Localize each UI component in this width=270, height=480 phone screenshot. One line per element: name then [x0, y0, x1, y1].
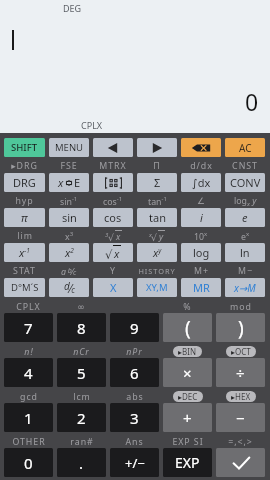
button[interactable]: x-1: [4, 243, 45, 262]
staticText: cos-1: [103, 195, 123, 207]
button[interactable]: cos: [93, 208, 133, 227]
staticText: Π: [153, 160, 161, 172]
staticText: ▸DRG: [11, 160, 38, 172]
button[interactable]: Left: [93, 138, 133, 157]
button[interactable]: x→M: [225, 278, 265, 297]
button[interactable]: 0: [4, 448, 53, 477]
button[interactable]: tan: [137, 208, 177, 227]
button[interactable]: [93, 173, 133, 192]
staticText: 8: [77, 318, 86, 338]
staticText: 3: [130, 408, 139, 428]
staticText: sin: [62, 210, 77, 225]
staticText: −: [236, 408, 245, 428]
button[interactable]: sin: [49, 208, 89, 227]
button[interactable]: Right: [137, 138, 177, 157]
button[interactable]: 2: [57, 403, 106, 432]
button[interactable]: .: [57, 448, 106, 477]
button[interactable]: xy: [137, 243, 177, 262]
staticText: ran#: [70, 436, 94, 448]
staticText: %: [183, 301, 192, 313]
staticText: X: [110, 280, 117, 295]
button[interactable]: −: [216, 403, 265, 432]
button[interactable]: 1: [4, 403, 53, 432]
staticText: i: [200, 210, 203, 225]
button[interactable]: 4: [4, 358, 53, 387]
staticText: CPLX: [81, 119, 103, 131]
staticText: ▸OCT: [231, 346, 251, 357]
staticText: CNST: [232, 160, 258, 172]
button[interactable]: x2: [49, 243, 89, 262]
button[interactable]: ln: [225, 243, 265, 262]
staticText: 3: [105, 231, 109, 239]
button[interactable]: XY,M: [137, 278, 177, 297]
staticText: nPr: [126, 346, 143, 358]
button[interactable]: AC: [225, 138, 265, 157]
button[interactable]: x: [49, 173, 89, 192]
button[interactable]: [216, 448, 265, 477]
staticText: d⁄c: [64, 279, 75, 296]
staticText: +: [183, 408, 192, 428]
button[interactable]: (: [163, 313, 212, 342]
button[interactable]: i: [181, 208, 221, 227]
staticText: E: [74, 175, 81, 190]
staticText: lim: [17, 230, 33, 242]
staticText: y: [159, 231, 164, 243]
staticText: π: [21, 210, 28, 225]
staticText: log: [193, 245, 210, 260]
button[interactable]: 8: [57, 313, 106, 342]
button[interactable]: Σ: [137, 173, 177, 192]
button[interactable]: √: [93, 243, 133, 262]
button[interactable]: MR: [181, 278, 221, 297]
staticText: a b⁄c: [61, 265, 77, 278]
button[interactable]: ∫dx: [181, 173, 221, 192]
button[interactable]: +/−: [110, 448, 159, 477]
button[interactable]: EXP: [163, 448, 212, 477]
button[interactable]: 3: [110, 403, 159, 432]
button[interactable]: DRG: [4, 173, 45, 192]
button[interactable]: e: [225, 208, 265, 227]
staticText: AC: [239, 141, 252, 155]
staticText: ▸BIN: [178, 346, 197, 357]
button[interactable]: ): [216, 313, 265, 342]
staticText: ×: [183, 363, 192, 383]
staticText: tan-1: [148, 195, 167, 207]
staticText: DEG: [63, 2, 82, 14]
staticText: 6: [130, 363, 139, 383]
button[interactable]: +: [163, 403, 212, 432]
staticText: 4: [24, 363, 33, 383]
staticText: x: [58, 175, 64, 190]
staticText: M+: [194, 265, 209, 277]
button[interactable]: π: [4, 208, 45, 227]
button[interactable]: SHIFT: [4, 138, 45, 157]
staticText: logx y: [234, 195, 257, 208]
button[interactable]: D°M´S: [4, 278, 45, 297]
staticText: D°M´S: [11, 281, 39, 294]
staticText: M−: [238, 265, 253, 277]
staticText: .: [79, 453, 84, 473]
button[interactable]: 9: [110, 313, 159, 342]
button[interactable]: ×: [163, 358, 212, 387]
button[interactable]: MENU: [49, 138, 89, 157]
button[interactable]: 5: [57, 358, 106, 387]
staticText: =,<,>: [228, 436, 253, 448]
button[interactable]: X: [93, 278, 133, 297]
staticText: SHIFT: [11, 141, 38, 154]
staticText: CPLX: [16, 301, 41, 313]
staticText: abs: [126, 391, 144, 403]
button[interactable]: ÷: [216, 358, 265, 387]
staticText: MTRX: [99, 160, 127, 172]
button[interactable]: Delete: [181, 138, 221, 157]
button[interactable]: CONV: [225, 173, 265, 192]
staticText: Σ: [154, 175, 161, 190]
button[interactable]: d⁄c: [49, 278, 89, 297]
staticText: ▸HEX: [231, 391, 251, 402]
staticText: e: [242, 210, 248, 225]
staticText: EXP SI: [172, 436, 204, 448]
staticText: EXP: [175, 453, 200, 472]
button[interactable]: log: [181, 243, 221, 262]
staticText: Y: [110, 265, 116, 277]
staticText: tan: [149, 210, 166, 225]
staticText: lcm: [73, 391, 91, 403]
button[interactable]: 7: [4, 313, 53, 342]
button[interactable]: 6: [110, 358, 159, 387]
